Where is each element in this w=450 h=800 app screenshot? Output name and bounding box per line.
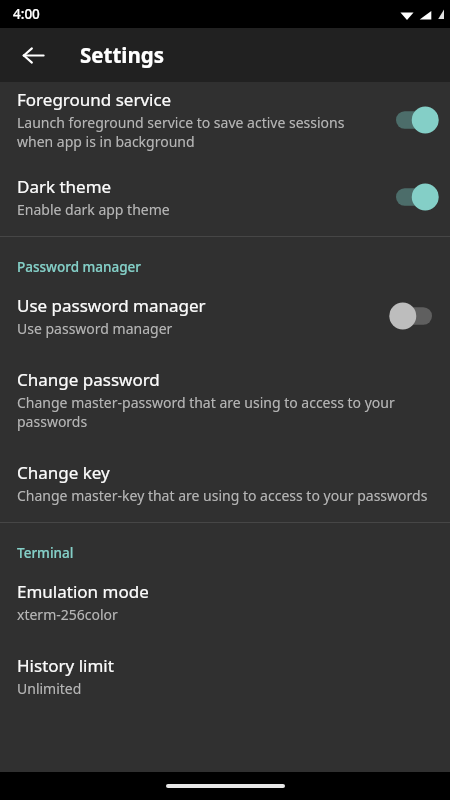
button[interactable]: Back	[12, 34, 54, 76]
staticText: Password manager	[17, 258, 450, 276]
staticText: Change password	[17, 368, 160, 391]
staticText: xterm-256color	[17, 605, 118, 624]
staticText: Change master-key that are using to acce…	[17, 486, 428, 505]
staticText: Change key	[17, 461, 110, 484]
button[interactable]: Use password manager	[0, 283, 450, 353]
button[interactable]: Toggle Dark theme	[389, 182, 439, 212]
button[interactable]: Emulation mode	[0, 569, 450, 639]
button[interactable]: Foreground service	[0, 82, 450, 160]
staticText: Emulation mode	[17, 580, 149, 603]
button[interactable]: History limit	[0, 639, 450, 713]
staticText: Unlimited	[17, 679, 82, 698]
staticText: 4:00	[13, 5, 40, 23]
staticText: Launch foreground service to save active…	[17, 113, 383, 151]
button[interactable]: Dark theme	[0, 160, 450, 236]
button[interactable]: Toggle Foreground service	[389, 105, 439, 135]
button[interactable]: Change key	[0, 446, 450, 522]
staticText: Use password manager	[17, 294, 206, 317]
staticText: Change master-password that are using to…	[17, 393, 433, 431]
staticText: Use password manager	[17, 319, 173, 338]
button[interactable]: Change password	[0, 353, 450, 446]
staticText: Foreground service	[17, 88, 172, 111]
staticText: Enable dark app theme	[17, 200, 170, 219]
button[interactable]: Toggle Use password manager	[389, 301, 439, 331]
staticText: History limit	[17, 654, 114, 677]
staticText: Terminal	[17, 544, 450, 562]
staticText: Settings	[80, 41, 165, 69]
staticText: Dark theme	[17, 175, 112, 198]
